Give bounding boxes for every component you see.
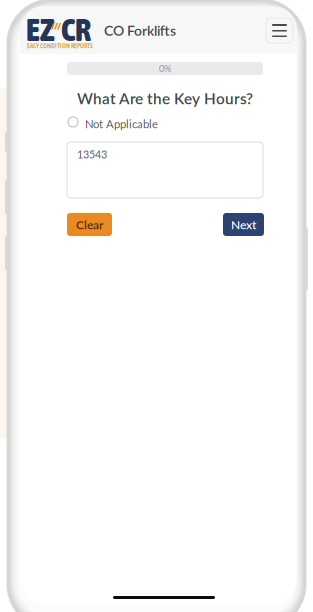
button[interactable]: Clear <box>67 213 112 236</box>
button[interactable]: Next <box>223 213 264 236</box>
staticText: EZ <box>26 11 54 48</box>
staticText: Not Applicable <box>85 117 158 131</box>
staticText: CR <box>61 11 91 48</box>
button[interactable]: Menu <box>266 18 293 43</box>
staticText: 13543 <box>77 148 107 161</box>
staticText: Clear <box>76 217 103 232</box>
staticText: Next <box>231 217 256 232</box>
staticText: EASY CONDITION REPORTS <box>27 42 93 50</box>
staticText: 0% <box>159 63 171 74</box>
staticText: What Are the Key Hours? <box>77 89 253 107</box>
staticText: CO Forklifts <box>104 22 176 39</box>
